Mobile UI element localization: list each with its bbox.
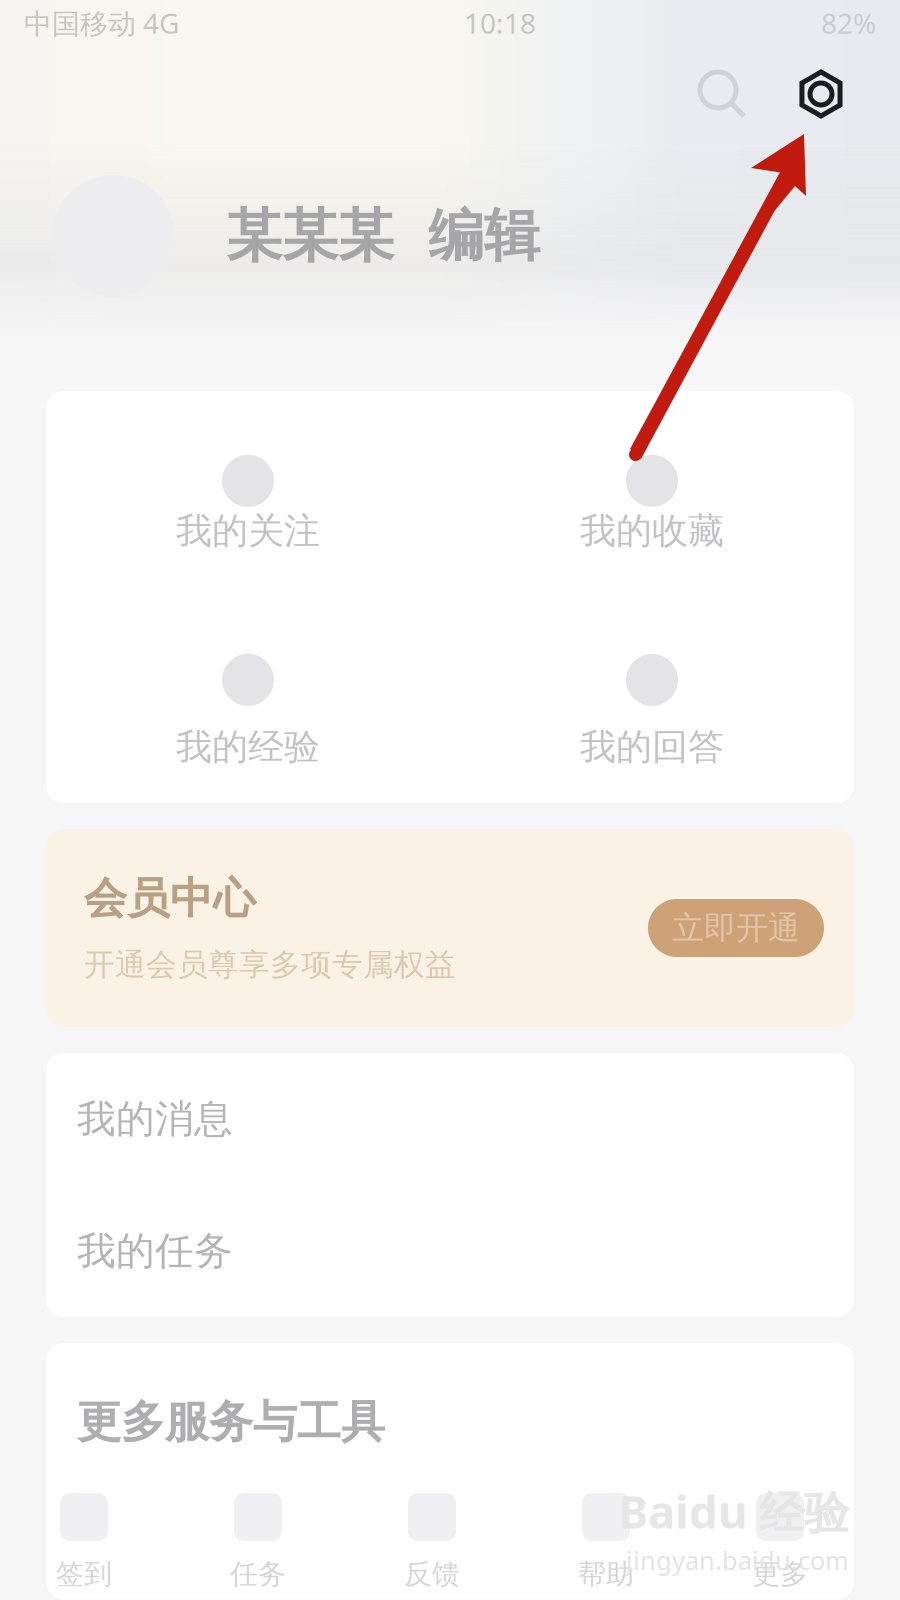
staticText: 我的消息 — [77, 1095, 233, 1143]
staticText: 开通会员尊享多项专属权益 — [84, 946, 456, 984]
staticText: 某某某 编辑 — [226, 202, 540, 270]
staticText: 更多服务与工具 — [77, 1395, 385, 1449]
staticText: 我的收藏 — [580, 509, 724, 553]
staticText: 更多 — [752, 1557, 808, 1591]
staticText: 反馈 — [404, 1557, 460, 1591]
staticText: 我的回答 — [580, 725, 724, 769]
button[interactable]: 我的任务 — [46, 1185, 854, 1317]
button[interactable]: 搜索 — [688, 61, 754, 127]
button[interactable]: 立即开通 — [648, 899, 824, 957]
staticText: 我的任务 — [77, 1227, 233, 1275]
button[interactable]: 设置 — [788, 61, 854, 127]
staticText: 任务 — [230, 1557, 286, 1591]
staticText: 10:18 — [464, 4, 536, 42]
button[interactable]: 我的收藏 — [450, 391, 854, 617]
button[interactable]: 我的消息 — [46, 1053, 854, 1185]
button[interactable]: 我的经验 — [46, 617, 450, 803]
button[interactable]: 某某某 编辑 — [0, 142, 900, 330]
button[interactable]: 更多 — [693, 1493, 867, 1591]
staticText: 会员中心 — [84, 872, 256, 925]
staticText: 立即开通 — [672, 908, 800, 948]
staticText: 中国移动 4G — [24, 4, 179, 42]
staticText: Baidu 经验 — [618, 1481, 849, 1541]
staticText: jingyan.baidu.com — [626, 1543, 849, 1577]
button[interactable]: 任务 — [171, 1493, 345, 1591]
staticText: 签到 — [56, 1557, 112, 1591]
button[interactable]: 反馈 — [345, 1493, 519, 1591]
button[interactable]: 我的回答 — [450, 617, 854, 803]
button[interactable]: 签到 — [0, 1493, 171, 1591]
staticText: 我的经验 — [176, 725, 320, 769]
staticText: 82% — [821, 4, 876, 42]
staticText: 我的关注 — [176, 509, 320, 553]
button[interactable]: 帮助 — [519, 1493, 693, 1591]
staticText: 帮助 — [578, 1557, 634, 1591]
button[interactable]: 我的关注 — [46, 391, 450, 617]
